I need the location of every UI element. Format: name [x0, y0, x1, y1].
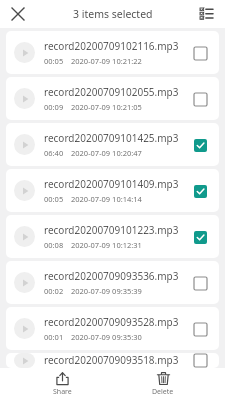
button[interactable]: Not selected [185, 38, 215, 68]
staticText: 3 items selected [73, 7, 153, 21]
staticText: record20200709101223.mp3 [44, 223, 179, 237]
button[interactable]: Selected [185, 130, 215, 160]
button[interactable]: Close [5, 1, 31, 27]
button[interactable]: Play record20200709093536.mp3 [14, 272, 35, 293]
staticText: 2020-07-09 10:20:47 [71, 148, 142, 158]
button[interactable]: Play record20200709101425.mp3 [14, 134, 35, 155]
button[interactable]: Not selected [185, 84, 215, 114]
button[interactable]: Play record20200709101409.mp3 [6, 169, 219, 212]
button[interactable]: Selected [185, 222, 215, 252]
staticText: 00:08 [44, 240, 64, 250]
button[interactable]: Delete [123, 368, 203, 400]
button[interactable]: Selected [185, 176, 215, 206]
staticText: 2020-07-09 10:21:05 [71, 102, 142, 112]
button[interactable]: Play record20200709101425.mp3 [6, 123, 219, 166]
button[interactable]: Not selected [185, 353, 215, 368]
button[interactable]: Play record20200709102116.mp3 [6, 31, 219, 74]
staticText: 00:02 [44, 286, 64, 296]
staticText: 06:40 [44, 148, 64, 158]
staticText: 2020-07-09 09:35:30 [71, 332, 142, 342]
staticText: 2020-07-09 09:35:39 [71, 286, 142, 296]
button[interactable]: Play record20200709093528.mp3 [14, 318, 35, 339]
staticText: Delete [152, 387, 174, 397]
button[interactable]: Select all [193, 1, 219, 27]
staticText: record20200709093536.mp3 [44, 269, 179, 283]
staticText: 00:01 [44, 332, 64, 342]
staticText: 00:05 [44, 194, 64, 204]
staticText: record20200709093518.mp3 [44, 353, 179, 367]
staticText: 00:05 [44, 56, 64, 66]
button[interactable]: Play record20200709102116.mp3 [14, 42, 35, 63]
staticText: 00:09 [44, 102, 64, 112]
button[interactable]: Play record20200709101223.mp3 [6, 215, 219, 258]
button[interactable]: Play record20200709093518.mp3 [14, 353, 35, 368]
staticText: record20200709093528.mp3 [44, 315, 179, 329]
button[interactable]: Play record20200709102055.mp3 [6, 77, 219, 120]
button[interactable]: Play record20200709093518.mp3 [6, 353, 219, 368]
button[interactable]: Play record20200709102055.mp3 [14, 88, 35, 109]
staticText: 2020-07-09 10:14:14 [71, 194, 142, 204]
button[interactable]: Share [22, 368, 102, 400]
staticText: record20200709101409.mp3 [44, 177, 179, 191]
staticText: 2020-07-09 10:12:31 [71, 240, 142, 250]
button[interactable]: Play record20200709101409.mp3 [14, 180, 35, 201]
staticText: 2020-07-09 10:21:22 [71, 56, 142, 66]
staticText: record20200709102055.mp3 [44, 85, 179, 99]
staticText: Share [53, 387, 72, 397]
button[interactable]: Play record20200709093528.mp3 [6, 307, 219, 350]
button[interactable]: Not selected [185, 314, 215, 344]
button[interactable]: Not selected [185, 268, 215, 298]
staticText: record20200709102116.mp3 [44, 39, 179, 53]
staticText: record20200709101425.mp3 [44, 131, 179, 145]
button[interactable]: Play record20200709093536.mp3 [6, 261, 219, 304]
button[interactable]: Play record20200709101223.mp3 [14, 226, 35, 247]
